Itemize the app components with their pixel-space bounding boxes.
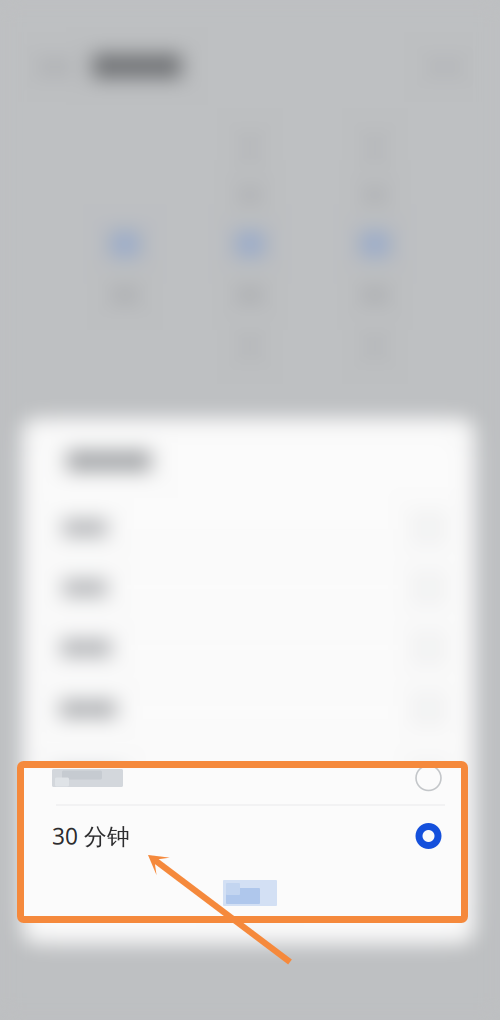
staticText: 30 分钟 [52,821,130,851]
button[interactable] [0,0,500,1020]
button[interactable]: 30 分钟 [0,0,500,1020]
button[interactable] [0,0,500,1020]
button[interactable] [0,0,500,1020]
staticText: 30 分钟 [52,821,130,851]
button[interactable] [0,0,500,1020]
button[interactable] [0,0,500,1020]
button[interactable] [0,0,500,1020]
button[interactable]: 30 分钟 [0,0,500,1020]
button[interactable] [0,0,500,1020]
button[interactable] [0,0,500,1020]
button[interactable] [0,0,500,1020]
button[interactable] [0,0,500,1020]
button[interactable]: More [0,0,500,1020]
button[interactable]: Confirm [0,0,500,1020]
button[interactable] [0,0,500,1020]
button[interactable] [0,0,500,1020]
button[interactable]: Confirm [0,0,500,1020]
button[interactable] [0,0,500,1020]
button[interactable]: Back [0,0,500,1020]
